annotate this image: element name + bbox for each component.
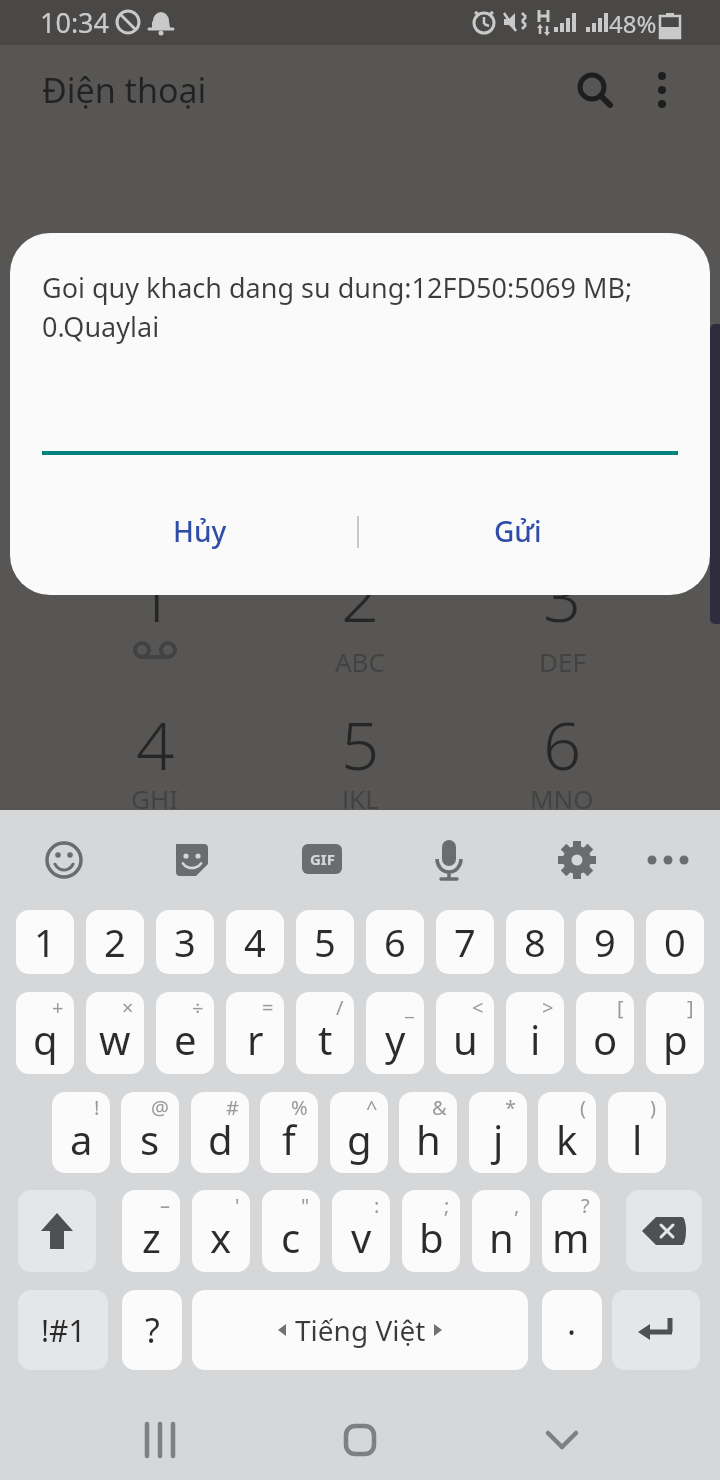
button[interactable]: Gửi xyxy=(428,495,608,567)
button[interactable]: a xyxy=(52,1092,110,1173)
button[interactable]: Tiếng Việt xyxy=(192,1290,528,1370)
staticText: 9 xyxy=(594,916,616,968)
staticText: < xyxy=(472,994,484,1021)
button[interactable] xyxy=(626,1190,702,1272)
staticText: 7 xyxy=(454,916,476,968)
staticText: ( xyxy=(580,1094,586,1121)
button[interactable]: Hủy xyxy=(110,495,290,567)
button[interactable]: f xyxy=(260,1092,318,1173)
staticText: w xyxy=(99,1012,131,1066)
button[interactable]: ? xyxy=(122,1290,182,1370)
button[interactable]: 5 xyxy=(296,910,354,974)
staticText: 2 xyxy=(104,916,126,968)
button[interactable]: . xyxy=(542,1290,602,1370)
button[interactable]: r xyxy=(226,992,284,1074)
staticText: o xyxy=(593,1012,618,1066)
staticText: x xyxy=(210,1210,232,1264)
button[interactable]: t xyxy=(296,992,354,1074)
button[interactable]: u xyxy=(436,992,494,1074)
button[interactable]: g xyxy=(330,1092,388,1173)
staticText: 4 xyxy=(136,698,175,778)
button[interactable]: 7 xyxy=(436,910,494,974)
staticText: _ xyxy=(405,994,414,1021)
staticText: # xyxy=(226,1094,239,1121)
button[interactable]: i xyxy=(506,992,564,1074)
staticText: ? xyxy=(145,1307,160,1353)
staticText: & xyxy=(432,1094,447,1121)
button[interactable]: y xyxy=(366,992,424,1074)
staticText: g xyxy=(347,1112,372,1166)
staticText: ' xyxy=(235,1192,240,1219)
staticText: MNO xyxy=(530,781,594,809)
staticText: : xyxy=(374,1192,380,1219)
button[interactable]: j xyxy=(469,1092,527,1173)
staticText: 4 xyxy=(244,916,266,968)
staticText: ? xyxy=(581,1192,590,1219)
button[interactable]: w xyxy=(86,992,144,1074)
button[interactable]: 2 xyxy=(86,910,144,974)
button[interactable]: 6 xyxy=(366,910,424,974)
button[interactable]: d xyxy=(191,1092,249,1173)
button[interactable] xyxy=(560,60,690,120)
staticText: ; xyxy=(444,1192,450,1219)
button[interactable]: q xyxy=(16,992,74,1074)
button[interactable]: p xyxy=(646,992,704,1074)
button[interactable]: n xyxy=(472,1190,530,1272)
staticText: !#1 xyxy=(41,1310,86,1351)
staticText: m xyxy=(552,1210,590,1264)
button[interactable]: s xyxy=(121,1092,179,1173)
button[interactable]: z xyxy=(122,1190,180,1272)
staticText: > xyxy=(542,994,554,1021)
button[interactable]: h xyxy=(399,1092,457,1173)
staticText: e xyxy=(174,1012,197,1066)
button[interactable]: 1 xyxy=(16,910,74,974)
staticText: Goi quy khach dang su dung:12FD50:5069 M… xyxy=(42,269,633,345)
staticText: 48% xyxy=(609,7,657,40)
staticText: + xyxy=(52,994,64,1021)
button[interactable]: GIF xyxy=(302,844,342,874)
button[interactable]: l xyxy=(608,1092,666,1173)
staticText: ÷ xyxy=(192,994,204,1021)
staticText: n xyxy=(489,1210,514,1264)
staticText: v xyxy=(351,1210,372,1264)
staticText: 5 xyxy=(314,916,336,968)
staticText: s xyxy=(140,1112,160,1166)
staticText: b xyxy=(419,1210,444,1264)
button[interactable]: c xyxy=(262,1190,320,1272)
staticText: @ xyxy=(151,1094,169,1121)
button[interactable]: !#1 xyxy=(18,1290,108,1370)
staticText: u xyxy=(453,1012,478,1066)
button[interactable]: v xyxy=(332,1190,390,1272)
staticText: 6 xyxy=(384,916,406,968)
staticText: 0 xyxy=(664,916,686,968)
staticText: " xyxy=(301,1192,310,1219)
staticText: l xyxy=(632,1112,643,1166)
staticText: Điện thoại xyxy=(42,67,207,113)
staticText: ] xyxy=(687,994,694,1021)
button[interactable]: x xyxy=(192,1190,250,1272)
staticText: . xyxy=(567,1299,577,1345)
button[interactable]: 8 xyxy=(506,910,564,974)
staticText: k xyxy=(556,1112,578,1166)
button[interactable]: k xyxy=(538,1092,596,1173)
button[interactable]: e xyxy=(156,992,214,1074)
staticText: * xyxy=(505,1094,517,1121)
staticText: h xyxy=(416,1112,441,1166)
button[interactable] xyxy=(18,1190,96,1272)
button[interactable]: 3 xyxy=(156,910,214,974)
button[interactable]: o xyxy=(576,992,634,1074)
staticText: Tiếng Việt xyxy=(295,1311,426,1349)
button[interactable]: 9 xyxy=(576,910,634,974)
staticText: c xyxy=(281,1210,301,1264)
staticText: 1 xyxy=(136,550,175,630)
staticText: ^ xyxy=(366,1094,378,1121)
staticText: GIF xyxy=(310,849,335,869)
staticText: j xyxy=(493,1112,504,1166)
button[interactable]: m xyxy=(542,1190,600,1272)
staticText: % xyxy=(291,1094,308,1121)
button[interactable] xyxy=(612,1290,700,1370)
staticText: q xyxy=(33,1012,58,1066)
button[interactable]: 4 xyxy=(226,910,284,974)
button[interactable]: 0 xyxy=(646,910,704,974)
button[interactable]: b xyxy=(402,1190,460,1272)
